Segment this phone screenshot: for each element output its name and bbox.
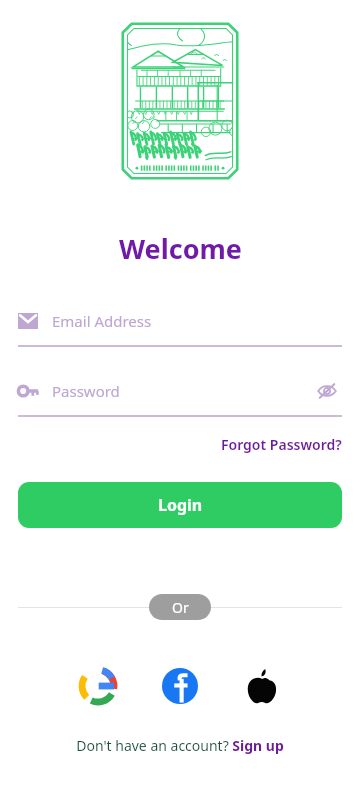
button[interactable]: Sign in with Apple: [240, 664, 284, 708]
button[interactable]: Don't have an account? Sign up: [76, 736, 284, 755]
button[interactable]: Show password: [312, 376, 342, 406]
staticText: Password: [52, 381, 120, 401]
staticText: Welcome: [119, 230, 242, 267]
button[interactable]: Forgot Password?: [221, 435, 342, 454]
button[interactable]: Login: [18, 482, 342, 528]
staticText: Or: [172, 598, 189, 617]
staticText: Email Address: [52, 311, 152, 331]
staticText: Don't have an account? Sign up: [76, 736, 284, 755]
staticText: Forgot Password?: [221, 435, 342, 454]
button[interactable]: Password: [18, 375, 342, 417]
button[interactable]: Sign in with Facebook: [158, 664, 202, 708]
button[interactable]: Sign in with Google: [76, 664, 120, 708]
staticText: Login: [158, 494, 203, 516]
button[interactable]: Email Address: [18, 305, 342, 347]
